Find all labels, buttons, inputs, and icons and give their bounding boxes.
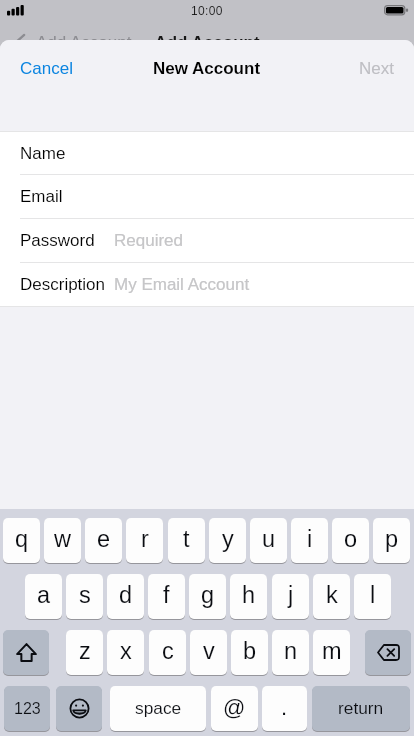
staticText: @ [223,695,246,720]
staticText: w [54,526,71,552]
staticText: Cancel [20,59,73,78]
staticText: c [162,638,174,664]
staticText: . [281,695,288,720]
button[interactable]: i [291,518,328,563]
button[interactable]: n [272,630,309,675]
button[interactable]: Shift [3,630,49,675]
button[interactable]: m [313,630,350,675]
staticText: Email [20,187,63,206]
button[interactable]: Cancel [0,48,89,89]
staticText: New Account [153,59,261,78]
staticText: return [338,698,384,717]
button[interactable]: s [66,574,103,619]
staticText: Password [20,231,95,250]
button[interactable]: o [332,518,369,563]
staticText: n [284,638,298,664]
button[interactable]: r [126,518,163,563]
button[interactable]: z [66,630,103,675]
staticText: space [135,698,182,717]
staticText: q [15,526,29,552]
staticText: a [37,582,51,608]
button[interactable]: Description [0,263,414,306]
button[interactable]: Next [343,48,414,89]
button[interactable]: k [313,574,350,619]
button[interactable]: Backspace [365,630,411,675]
staticText: d [119,582,133,608]
staticText: r [141,526,149,552]
button[interactable]: e [85,518,122,563]
button[interactable]: b [231,630,268,675]
staticText: m [322,638,342,664]
staticText: t [183,526,190,552]
button[interactable]: a [25,574,62,619]
staticText: v [203,638,215,664]
staticText: Description [20,275,106,294]
staticText: u [262,526,276,552]
button[interactable]: w [44,518,81,563]
button[interactable]: p [373,518,410,563]
staticText: 123 [14,700,41,718]
staticText: y [222,526,234,552]
button[interactable]: Email [0,175,414,219]
staticText: e [97,526,111,552]
button[interactable]: Add Account [0,31,414,53]
staticText: g [201,582,215,608]
staticText: Next [359,59,394,78]
button[interactable]: return [312,686,410,731]
button[interactable]: . [262,686,307,731]
staticText: h [242,582,256,608]
staticText: My Email Account [114,275,250,294]
staticText: k [326,582,338,608]
staticText: Add Account [36,33,132,52]
button[interactable]: x [107,630,144,675]
staticText: j [288,582,294,608]
staticText: 10:00 [191,4,223,17]
button[interactable]: f [148,574,185,619]
staticText: s [79,582,91,608]
staticText: x [120,638,132,664]
button[interactable]: @ [211,686,258,731]
staticText: z [79,638,91,664]
button[interactable]: space [110,686,206,731]
button[interactable]: l [354,574,391,619]
button[interactable]: q [3,518,40,563]
staticText: i [307,526,313,552]
staticText: b [243,638,257,664]
staticText: Required [114,231,183,250]
button[interactable]: c [149,630,186,675]
button[interactable]: g [189,574,226,619]
button[interactable]: Name [0,132,414,175]
button[interactable]: d [107,574,144,619]
button[interactable]: Emoji keyboard [56,686,102,731]
staticText: Add Account [0,33,414,52]
staticText: Name [20,144,66,163]
staticText: o [344,526,358,552]
button[interactable]: Password [0,219,414,263]
staticText: l [370,582,376,608]
button[interactable]: v [190,630,227,675]
staticText: p [385,526,399,552]
button[interactable]: y [209,518,246,563]
button[interactable]: h [230,574,267,619]
button[interactable]: t [168,518,205,563]
button[interactable]: u [250,518,287,563]
staticText: f [163,582,170,608]
button[interactable]: j [272,574,309,619]
button[interactable]: Numbers [4,686,50,731]
